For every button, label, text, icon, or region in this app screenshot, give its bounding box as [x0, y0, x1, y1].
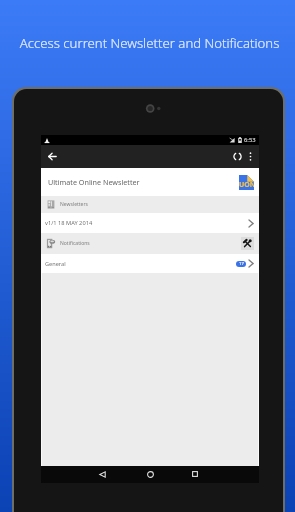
staticText: 17	[239, 261, 244, 267]
button[interactable]: v1/1 18 MAY 2014	[41, 213, 259, 233]
button[interactable]: More options	[242, 145, 259, 168]
staticText: Ultimate Online Newsletter	[48, 177, 140, 187]
button[interactable]: Newsletters	[41, 196, 259, 213]
staticText: 6:53	[244, 136, 256, 144]
button[interactable]: General	[41, 254, 259, 273]
staticText: v1/1 18 MAY 2014	[45, 219, 93, 227]
button[interactable]: Refresh	[229, 145, 246, 168]
staticText: Notifications	[60, 240, 90, 247]
staticText: Access current Newsletter and Notificati…	[4, 34, 295, 52]
button[interactable]: Settings	[241, 237, 254, 250]
staticText: General	[45, 260, 66, 268]
button[interactable]: Navigate up	[44, 145, 60, 168]
staticText: UON	[239, 180, 254, 190]
button[interactable]: Recent apps	[187, 466, 203, 482]
button[interactable]: Home	[142, 466, 158, 482]
button[interactable]: Notifications	[41, 233, 259, 254]
button[interactable]: Ultimate Online Newsletter	[41, 168, 259, 196]
staticText: Newsletters	[60, 201, 88, 208]
button[interactable]: Back	[94, 466, 110, 482]
